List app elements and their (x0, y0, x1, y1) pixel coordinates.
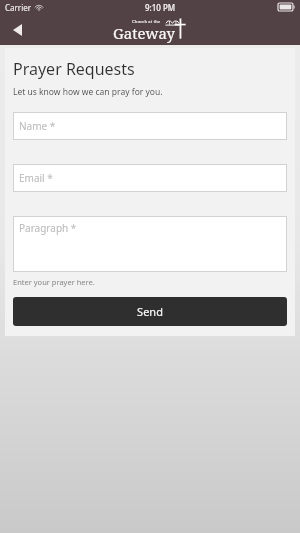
button[interactable]: Name * (13, 112, 287, 140)
staticText: Paragraph * (19, 221, 77, 235)
staticText: 9:10 PM (145, 2, 176, 13)
button[interactable]: Email * (13, 164, 287, 192)
staticText: Prayer Requests (13, 58, 135, 80)
staticText: Let us know how we can pray for you. (13, 86, 163, 98)
staticText: Carrier (5, 2, 32, 13)
staticText: Gateway (113, 23, 176, 43)
staticText: Name * (19, 119, 56, 133)
staticText: Enter your prayer here. (13, 277, 95, 287)
button[interactable]: Paragraph * (13, 216, 287, 272)
staticText: Church at the (132, 19, 161, 24)
staticText: Send (137, 304, 163, 319)
staticText: Email * (19, 171, 53, 185)
button[interactable]: Back (0, 14, 34, 45)
button[interactable]: Send (13, 297, 287, 326)
